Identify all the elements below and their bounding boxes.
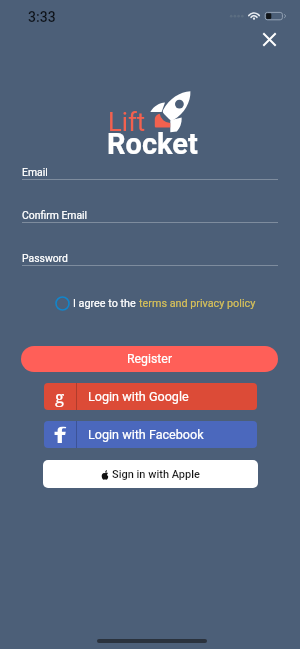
staticText: I agree to the	[73, 297, 139, 310]
staticText: Rocket	[107, 127, 198, 161]
staticText: Login with Google	[88, 389, 189, 404]
button[interactable]: Register	[21, 346, 278, 372]
button[interactable]: g	[44, 383, 257, 410]
button[interactable]: Login with Facebook	[44, 421, 257, 448]
staticText: Login with Facebook	[88, 427, 204, 442]
button[interactable]: Close	[255, 25, 283, 53]
staticText: Register	[127, 352, 173, 366]
staticText: g	[55, 385, 65, 408]
staticText: Lift	[108, 107, 146, 137]
staticText: Sign in with Apple	[112, 468, 200, 481]
staticText: Confirm Email	[22, 209, 88, 221]
staticText: Email	[22, 166, 48, 178]
staticText: terms and privacy policy	[139, 297, 256, 310]
button[interactable]: Sign in with Apple	[43, 460, 258, 488]
staticText: 3:33	[28, 9, 56, 25]
staticText: Password	[22, 252, 68, 264]
button[interactable]: I agree to the	[55, 292, 256, 314]
